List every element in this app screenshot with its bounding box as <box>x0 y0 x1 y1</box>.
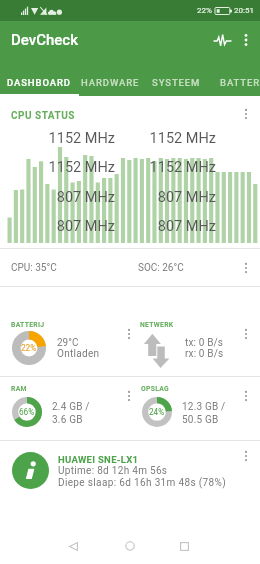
staticText: 24% <box>149 407 165 417</box>
staticText: 2.4 GB / <box>52 401 90 413</box>
staticText: Diepe slaap: 6d 16h 31m 48s (78%) <box>58 477 227 489</box>
staticText: BATTERIJ <box>11 321 45 329</box>
button[interactable]: Back <box>59 532 87 560</box>
staticText: SOC: 26°C <box>138 262 184 274</box>
staticText: 20:51 <box>234 6 254 15</box>
button[interactable]: Device options <box>237 447 255 465</box>
button[interactable]: CPU status options <box>237 105 255 123</box>
button[interactable]: Battery options <box>120 325 138 343</box>
staticText: 1152 MHz <box>115 130 216 147</box>
staticText: OPSLAG <box>141 385 169 393</box>
button[interactable]: Temperature options <box>237 259 255 277</box>
staticText: 1152 MHz <box>14 130 115 147</box>
staticText: 1152 MHz <box>115 159 216 176</box>
button[interactable]: More options <box>233 21 258 59</box>
button[interactable]: HUAWEI SNE-LX1 <box>0 441 260 506</box>
staticText: DASHBOARD <box>7 77 71 88</box>
button[interactable]: CPU: 35°C <box>0 249 260 286</box>
button[interactable]: Recent apps <box>170 532 198 560</box>
staticText: 50.5 GB <box>182 414 219 426</box>
staticText: 29°C <box>57 337 79 349</box>
staticText: HUAWEI SNE-LX1 <box>58 454 139 465</box>
button[interactable]: SYSTEEM <box>140 59 209 96</box>
staticText: 22% <box>197 6 212 15</box>
button[interactable]: DevCheck <box>2 21 90 59</box>
button[interactable]: BATTERIJ <box>209 59 260 96</box>
staticText: NETWERK <box>140 321 174 329</box>
button[interactable]: NETWERK <box>130 311 260 376</box>
button[interactable]: Live CPU monitor <box>207 21 237 59</box>
staticText: SYSTEEM <box>152 77 201 88</box>
staticText: tx: 0 B/s <box>185 337 224 349</box>
button[interactable]: RAM options <box>120 387 138 405</box>
staticText: 66% <box>19 407 35 417</box>
staticText: 807 MHz <box>115 189 216 206</box>
staticText: HARDWARE <box>81 77 140 88</box>
staticText: 1152 MHz <box>14 159 115 176</box>
staticText: DevCheck <box>11 31 79 49</box>
staticText: Uptime: 8d 12h 4m 56s <box>58 465 168 477</box>
staticText: 3.6 GB <box>52 414 83 426</box>
staticText: 807 MHz <box>115 218 216 235</box>
button[interactable]: Network options <box>237 325 255 343</box>
staticText: BATTERIJ <box>220 77 260 88</box>
button[interactable]: CPU STATUS <box>0 96 260 248</box>
staticText: CPU: 35°C <box>11 262 57 274</box>
staticText: 807 MHz <box>14 218 115 235</box>
button[interactable]: OPSLAG <box>130 377 260 440</box>
button[interactable]: OPSLAG options <box>237 387 255 405</box>
staticText: 807 MHz <box>14 189 115 206</box>
button[interactable]: HARDWARE <box>79 59 140 96</box>
staticText: 22% <box>21 343 37 353</box>
staticText: CPU STATUS <box>11 110 75 122</box>
staticText: Ontladen <box>57 348 100 360</box>
staticText: 12.3 GB / <box>182 401 226 413</box>
button[interactable]: RAM <box>0 377 130 440</box>
staticText: rx: 0 B/s <box>185 348 224 360</box>
button[interactable]: BATTERIJ <box>0 311 130 376</box>
button[interactable]: DASHBOARD <box>0 59 79 96</box>
staticText: RAM <box>11 385 27 393</box>
button[interactable]: Home <box>116 532 144 560</box>
